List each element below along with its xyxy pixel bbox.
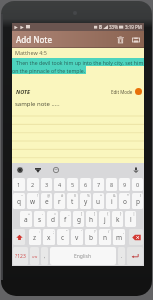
staticText: @ [47,193,51,198]
button[interactable]: v [71,229,83,245]
staticText: on the pinnacle of the temple. [12,67,86,74]
button[interactable]: t [67,193,78,209]
button[interactable]: 0 [132,178,143,191]
staticText: B [99,24,102,30]
staticText: / [108,229,110,234]
button[interactable]: a [20,211,32,227]
staticText: Add Note [16,34,52,45]
button[interactable]: e [41,193,52,209]
staticText: ?123 [15,253,26,260]
staticText: v [75,233,79,242]
staticText: i [111,197,113,206]
staticText: p [136,197,140,206]
button[interactable]: i [106,193,117,209]
button[interactable]: 5 [67,178,78,191]
staticText: 3 [45,181,49,188]
button[interactable]: u [93,193,104,209]
button[interactable]: z [29,229,41,245]
button[interactable]: 4 [54,178,65,191]
button[interactable]: g [73,211,84,227]
button[interactable]: k [112,211,123,227]
button[interactable]: Shift [13,229,25,245]
button[interactable]: , [41,247,48,265]
staticText: h [89,215,94,224]
button[interactable]: o [119,193,130,209]
button[interactable]: Settings [15,165,25,175]
staticText: j [104,215,106,224]
staticText: " [66,229,68,234]
staticText: , [44,253,46,260]
staticText: f [64,215,67,224]
button[interactable]: Backspace [129,229,143,245]
staticText: אא [32,254,38,259]
button[interactable]: 3 [41,178,52,191]
button[interactable]: Save note [128,31,143,48]
button[interactable]: 6 [80,178,91,191]
staticText: q [17,197,21,206]
staticText: 7 [97,181,101,188]
button[interactable]: d [47,211,58,227]
staticText: 1 [17,181,21,188]
button[interactable]: m [113,229,125,245]
button[interactable]: 7 [93,178,104,191]
button[interactable]: c [57,229,69,245]
button[interactable]: j [99,211,110,227]
button[interactable]: English [50,247,116,265]
staticText: 0 [136,181,140,188]
button[interactable]: n [99,229,111,245]
button[interactable]: Emoji [51,165,61,175]
staticText: ! [37,193,38,198]
staticText: Edit Mode [111,89,133,95]
button[interactable]: b [85,229,97,245]
staticText: c [61,233,65,242]
button[interactable]: x [43,229,55,245]
staticText: a [24,215,28,224]
button[interactable]: . [118,247,125,265]
staticText: 8 [110,181,114,188]
staticText: w [30,197,36,206]
button[interactable]: r [54,193,65,209]
button[interactable]: Edit Mode [111,88,142,95]
staticText: - [42,211,44,216]
staticText: { [107,211,109,216]
staticText: 5 [71,181,75,188]
button[interactable]: 9 [119,178,130,191]
button[interactable]: p [132,193,143,209]
button[interactable]: Delete note [113,31,128,48]
staticText: ^ [100,193,103,198]
staticText: u [96,197,101,206]
staticText: + [28,211,31,216]
button[interactable]: Clipboard [33,165,43,175]
staticText: NOTE [16,88,30,95]
staticText: } [120,211,122,216]
button[interactable]: ?123 [13,247,28,265]
button[interactable]: אא [30,247,39,265]
button[interactable]: w [27,193,39,209]
staticText: * [127,193,129,198]
button[interactable]: s [34,211,45,227]
staticText: s [38,215,42,224]
button[interactable]: f [60,211,71,227]
staticText: ~ [21,193,24,198]
button[interactable]: 8 [106,178,117,191]
button[interactable]: q [13,193,25,209]
staticText: $ [74,193,77,198]
staticText: # [61,193,64,198]
staticText: , [123,229,124,234]
button[interactable]: Voice input [131,165,141,175]
staticText: b [89,233,93,242]
staticText: d [51,215,55,224]
button[interactable]: h [86,211,97,227]
staticText: y [84,197,88,206]
button[interactable]: y [80,193,91,209]
staticText: English [74,253,92,260]
staticText: . [121,253,123,260]
staticText: l [130,215,132,224]
staticText: Matthew 4:5 [15,49,47,56]
staticText: 4 [58,181,62,188]
button[interactable]: 2 [27,178,39,191]
button[interactable]: 1 [13,178,25,191]
button[interactable]: Enter [127,247,143,265]
button[interactable]: l [125,211,136,227]
staticText: = [54,211,57,216]
